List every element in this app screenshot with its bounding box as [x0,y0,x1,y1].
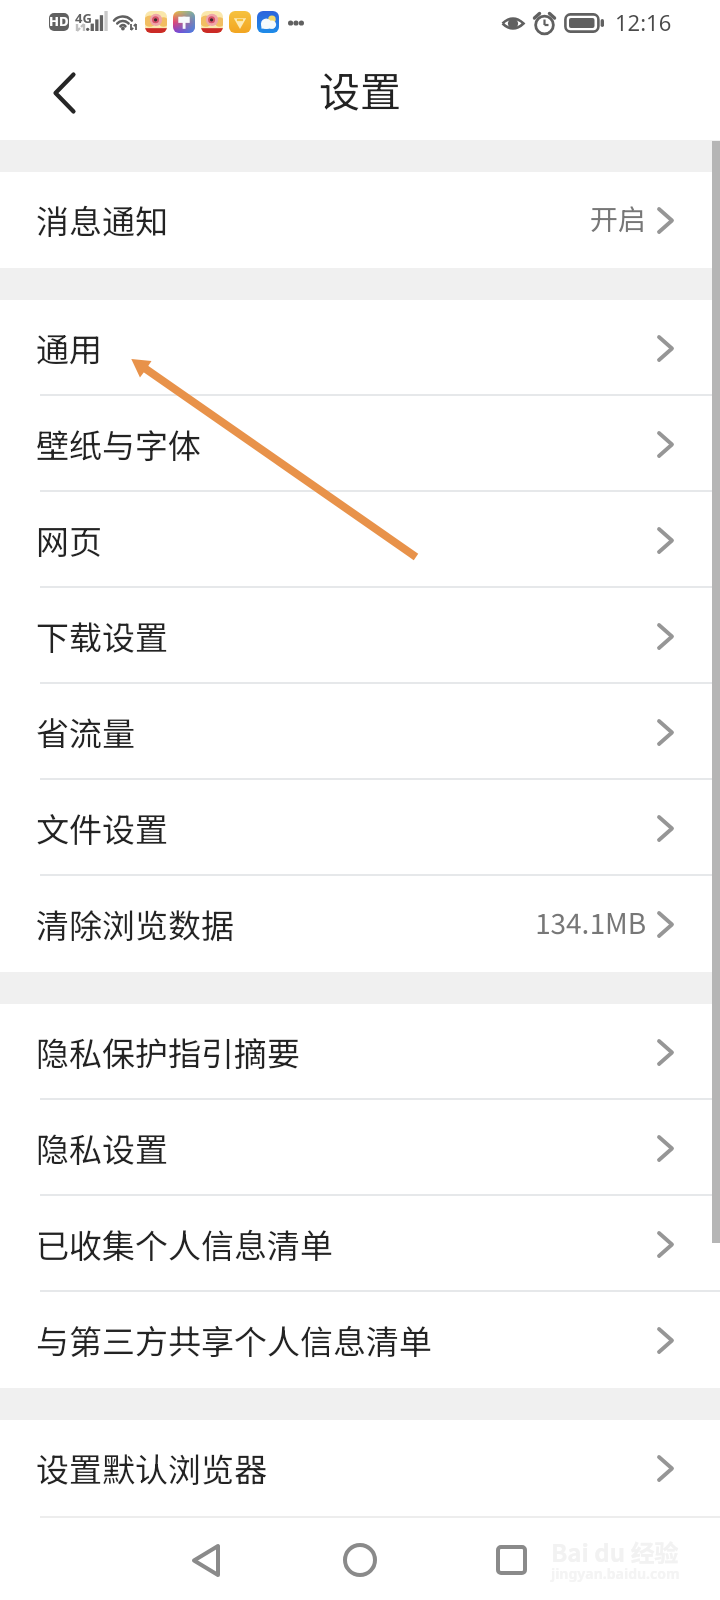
staticText: 12:16 [615,7,672,37]
button[interactable]: Home [302,1516,418,1600]
staticText: jingyan.baidu.com [551,1564,680,1583]
button[interactable]: 壁纸与字体 [0,396,720,492]
staticText: 开启 [590,198,647,239]
button[interactable]: Recents [454,1516,570,1600]
staticText: 隐私保护指引摘要 [36,1028,300,1076]
staticText: 文件设置 [36,804,168,852]
staticText: 设置默认浏览器 [36,1444,267,1492]
button[interactable]: 文件设置 [0,780,720,876]
staticText: 壁纸与字体 [36,420,201,468]
button[interactable]: Back [152,1516,268,1600]
staticText: 已收集个人信息清单 [36,1220,333,1268]
button[interactable]: Back [30,62,96,128]
button[interactable]: 网页 [0,492,720,588]
staticText: 134.1MB [535,902,647,943]
button[interactable]: 省流量 [0,684,720,780]
button[interactable]: 隐私保护指引摘要 [0,1004,720,1100]
staticText: 4G [75,9,92,27]
staticText: Bai du 经验 [551,1534,679,1569]
button[interactable]: 设置默认浏览器 [0,1420,720,1516]
button[interactable]: 已收集个人信息清单 [0,1196,720,1292]
button[interactable]: 与第三方共享个人信息清单 [0,1292,720,1388]
button[interactable]: 清除浏览数据 [0,876,720,972]
staticText: 设置 [319,59,401,118]
staticText: 隐私设置 [36,1124,168,1172]
button[interactable]: 消息通知 [0,172,720,268]
staticText: 清除浏览数据 [36,900,234,948]
button[interactable]: 隐私设置 [0,1100,720,1196]
staticText: 与第三方共享个人信息清单 [36,1316,432,1364]
button[interactable]: 下载设置 [0,588,720,684]
staticText: 下载设置 [36,612,168,660]
staticText: 消息通知 [36,196,168,244]
staticText: 省流量 [36,708,135,756]
staticText: HD [49,13,69,30]
staticText: 通用 [36,324,102,372]
staticText: 网页 [36,516,102,564]
button[interactable]: 通用 [0,300,720,396]
